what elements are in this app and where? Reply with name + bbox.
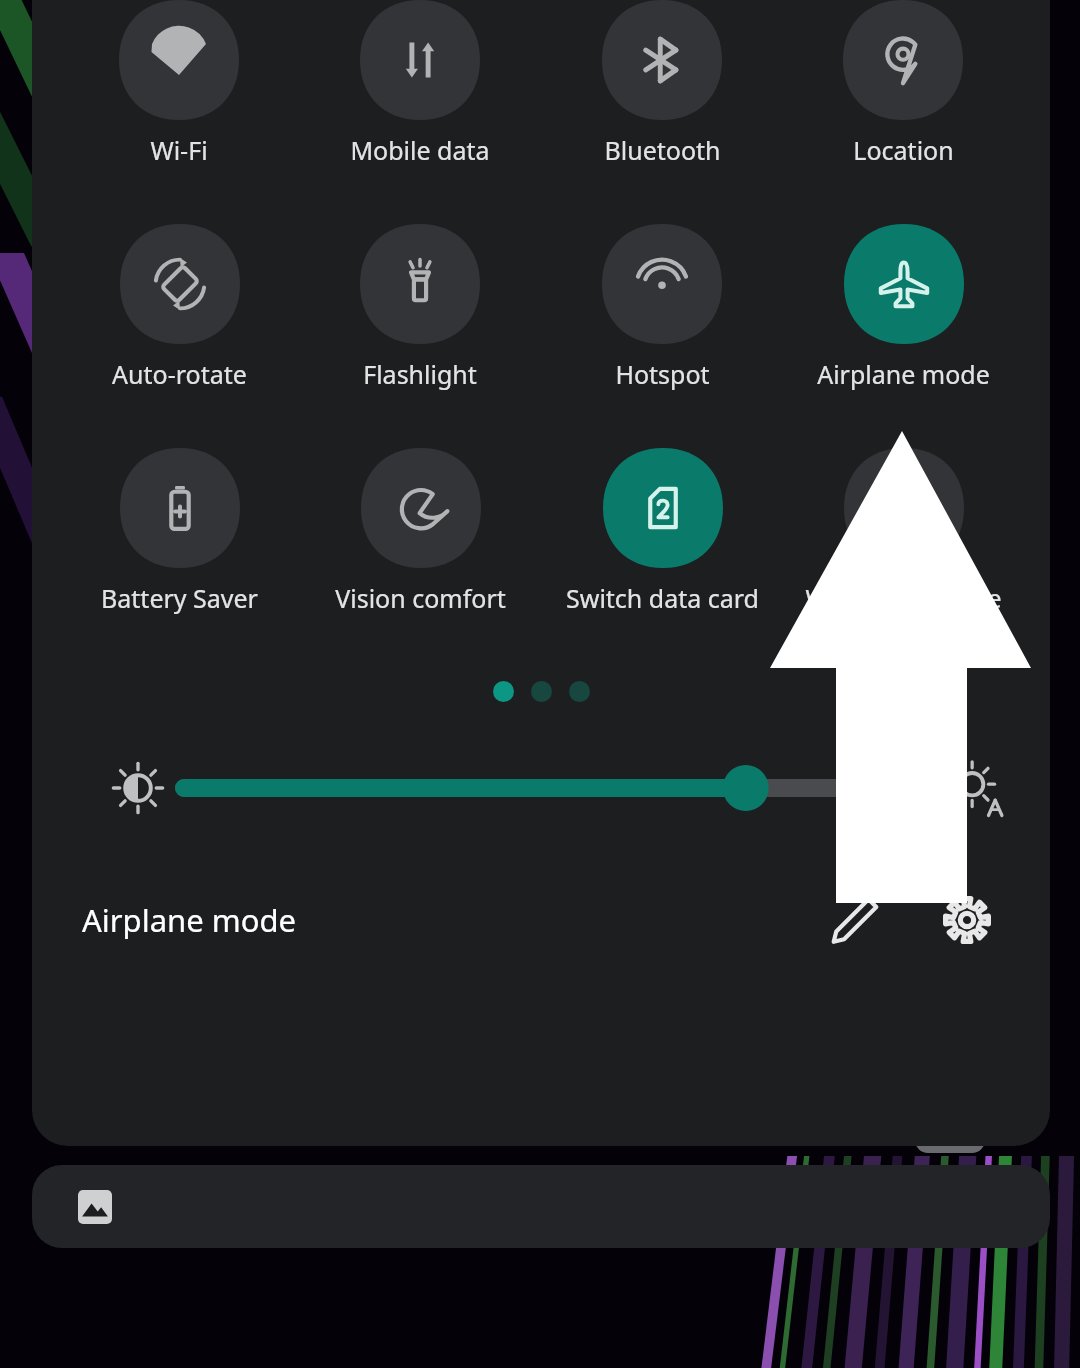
button[interactable]: Bluetooth [602, 0, 722, 167]
button[interactable]: Brightness [184, 766, 928, 810]
staticText: Airplane mode [817, 357, 990, 391]
staticText: Wireless balance [805, 581, 1002, 615]
button[interactable]: Wireless balance [805, 448, 1002, 615]
staticText: Airplane mode [82, 899, 297, 941]
button[interactable]: Airplane mode [817, 224, 990, 391]
staticText: Wi-Fi [150, 133, 208, 167]
button[interactable]: Wi-Fi [119, 0, 239, 167]
staticText: Flashlight [363, 357, 477, 391]
staticText: Hotspot [615, 357, 710, 391]
button[interactable]: Auto-rotate [112, 224, 247, 391]
button[interactable]: Edit tiles [816, 881, 894, 959]
button[interactable]: Battery Saver [101, 448, 258, 615]
button[interactable]: Flashlight [360, 224, 480, 391]
staticText: Bluetooth [604, 133, 721, 167]
button[interactable]: Settings [928, 881, 1006, 959]
staticText: Battery Saver [101, 581, 258, 615]
button[interactable]: Vision comfort [335, 448, 506, 615]
button[interactable]: Mobile data [350, 0, 490, 167]
button[interactable]: Hotspot [602, 224, 722, 391]
button[interactable]: Location [843, 0, 963, 167]
staticText: Mobile data [350, 133, 490, 167]
staticText: Location [853, 133, 954, 167]
staticText: Switch data card [566, 581, 759, 615]
staticText: Vision comfort [335, 581, 506, 615]
button[interactable] [32, 1165, 1050, 1248]
staticText: Auto-rotate [112, 357, 247, 391]
button[interactable]: Switch data card [566, 448, 759, 615]
